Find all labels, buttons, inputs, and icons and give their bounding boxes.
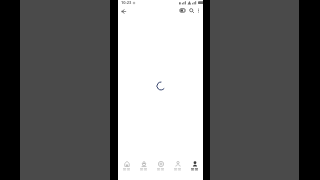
button[interactable]	[118, 157, 135, 175]
button[interactable]: Search	[187, 6, 196, 15]
staticText: 10:23	[121, 0, 132, 5]
button[interactable]: Screenshot	[178, 6, 187, 15]
button[interactable]: Back	[118, 6, 129, 17]
button[interactable]	[169, 157, 186, 175]
button[interactable]	[135, 157, 152, 175]
button[interactable]	[186, 157, 203, 175]
button[interactable]	[152, 157, 169, 175]
button[interactable]: More options	[194, 6, 203, 15]
